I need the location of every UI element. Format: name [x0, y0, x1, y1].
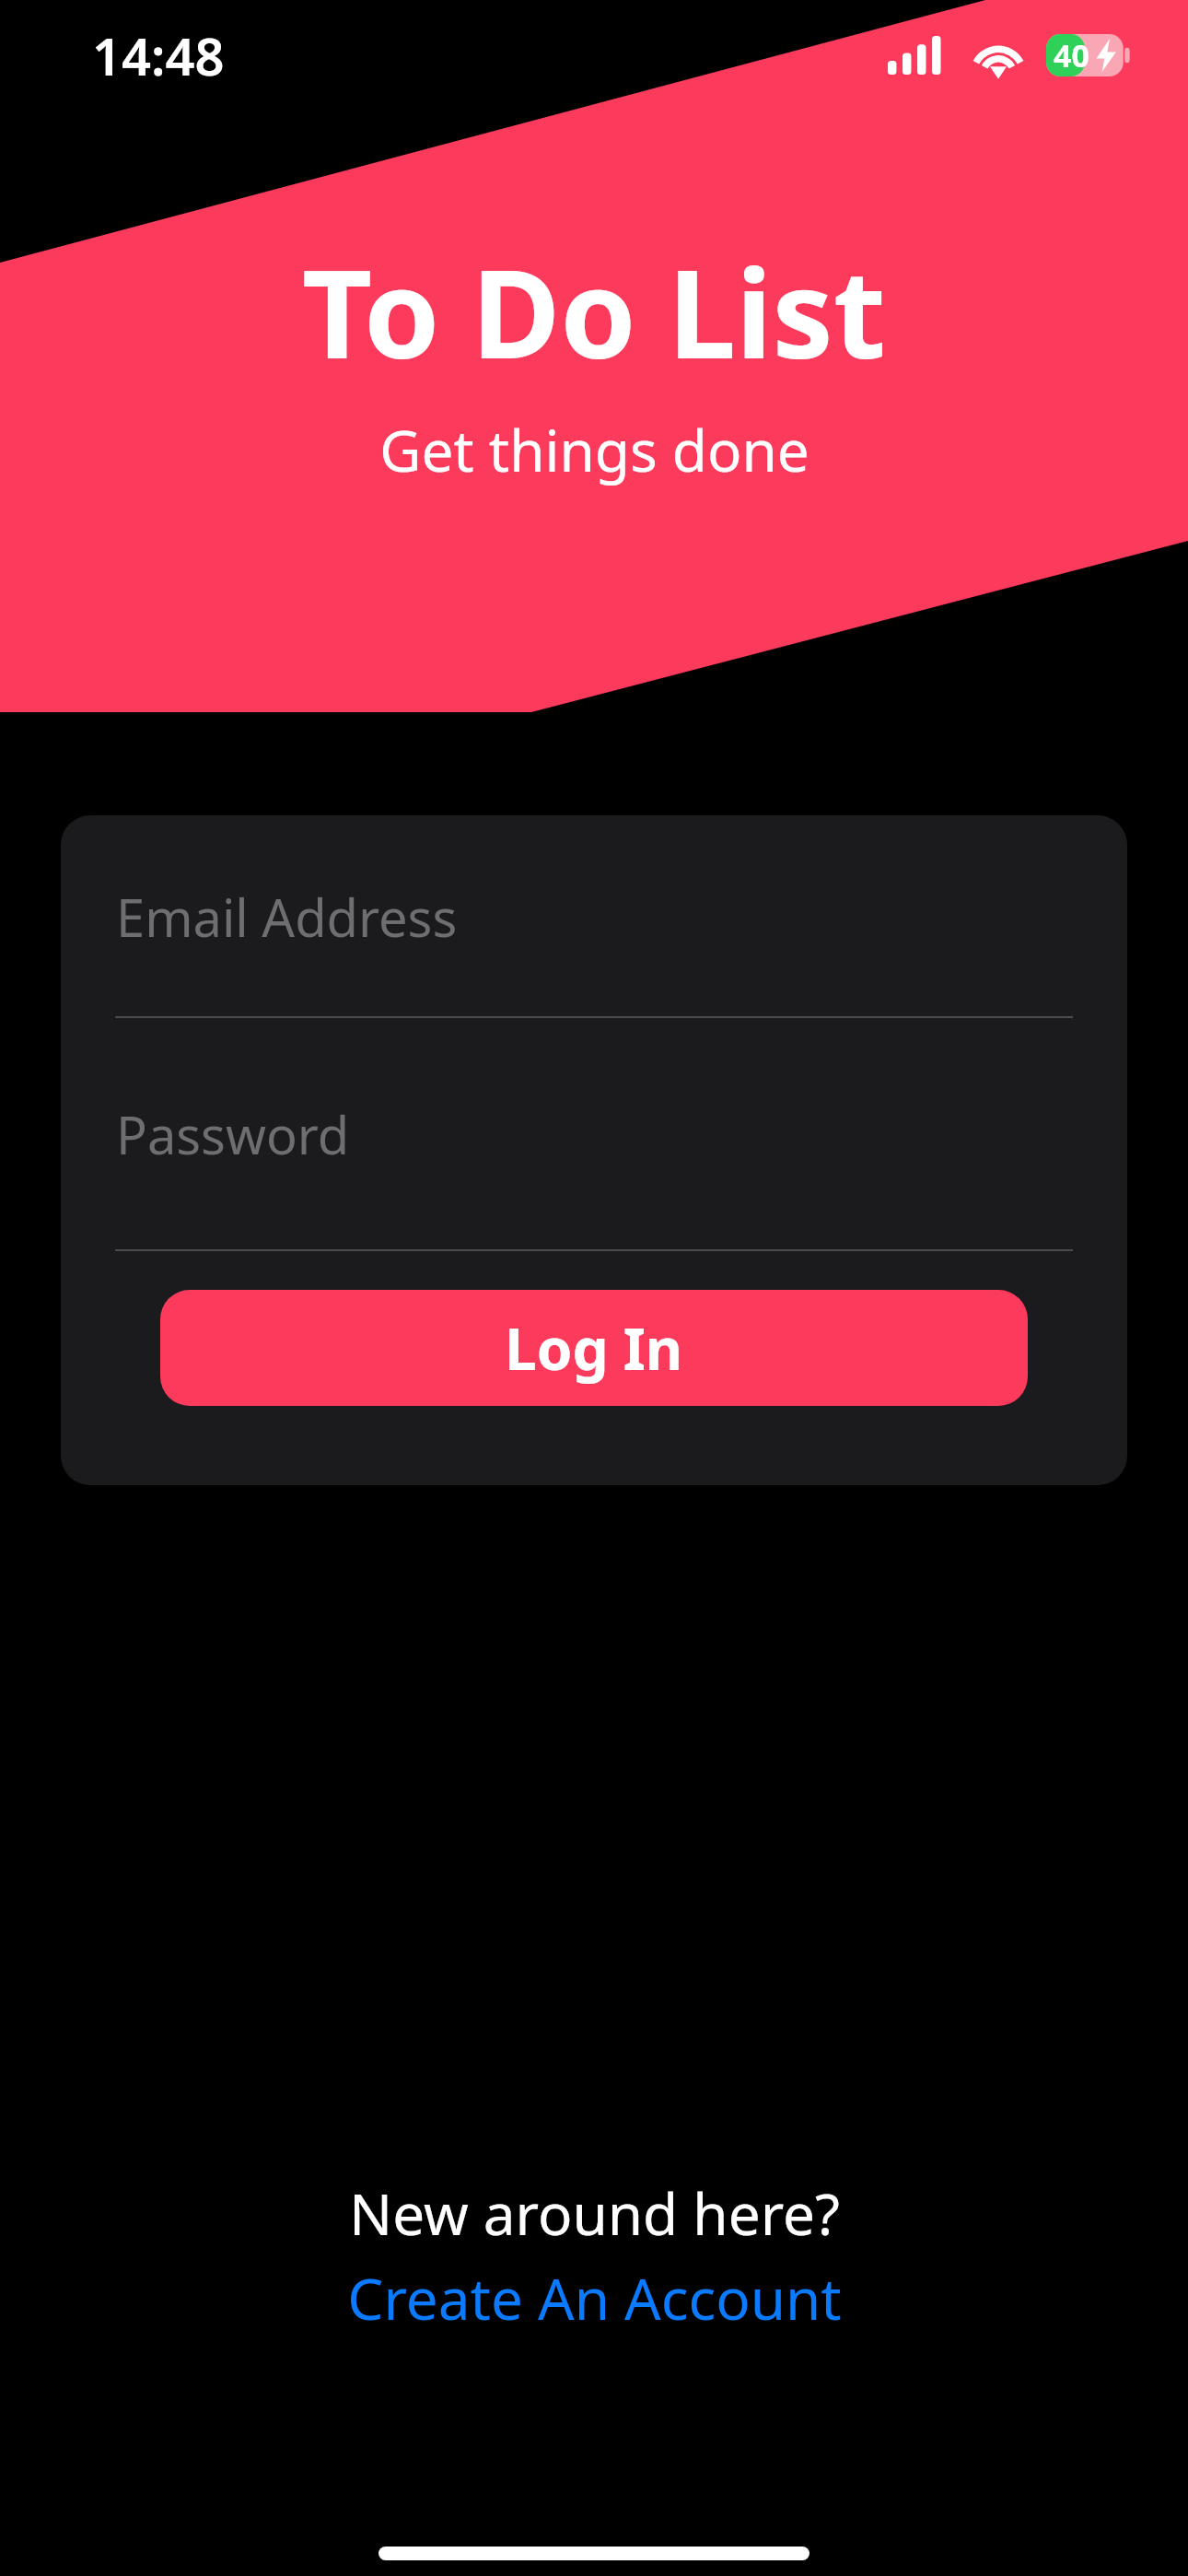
staticText: 14:48 [92, 20, 225, 90]
other: Cellular signal [888, 36, 949, 75]
staticText: To Do List [302, 228, 886, 394]
button[interactable]: Email Address [61, 815, 1127, 1017]
staticText: Email Address [116, 882, 458, 952]
staticText: Password [116, 1099, 350, 1169]
other: Battery 40 percent charging [1046, 34, 1131, 76]
staticText: New around here? [349, 2174, 840, 2252]
staticText: 40 [1054, 34, 1089, 76]
button[interactable]: Create An Account [347, 2259, 842, 2336]
button[interactable]: Log In [160, 1290, 1028, 1406]
button[interactable]: Password [61, 1018, 1127, 1249]
staticText: Create An Account [347, 2259, 842, 2336]
staticText: Get things done [379, 411, 809, 488]
other: Wi-Fi [971, 35, 1026, 76]
staticText: Log In [505, 1309, 683, 1387]
